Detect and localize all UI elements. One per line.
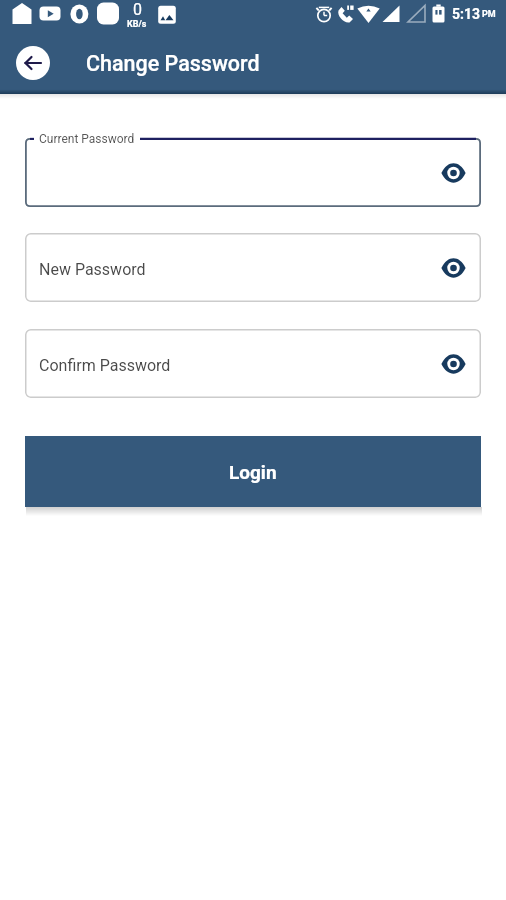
staticText: Login — [229, 461, 277, 483]
staticText: PM — [482, 9, 496, 20]
button[interactable]: Confirm Password — [25, 329, 481, 398]
staticText: 0 — [133, 0, 142, 19]
staticText: Confirm Password — [39, 356, 171, 375]
button[interactable]: Login — [25, 436, 481, 507]
button[interactable]: Current Password — [25, 138, 481, 207]
button[interactable]: Show password — [435, 346, 471, 382]
staticText: Current Password — [39, 132, 135, 146]
staticText: 5:13 — [452, 6, 481, 22]
button[interactable]: Show password — [435, 155, 471, 191]
staticText: New Password — [39, 260, 146, 279]
staticText: Change Password — [86, 51, 260, 76]
button[interactable]: Back — [16, 46, 50, 80]
button[interactable]: New Password — [25, 233, 481, 302]
staticText: KB/s — [127, 19, 147, 28]
button[interactable]: Show password — [435, 250, 471, 286]
